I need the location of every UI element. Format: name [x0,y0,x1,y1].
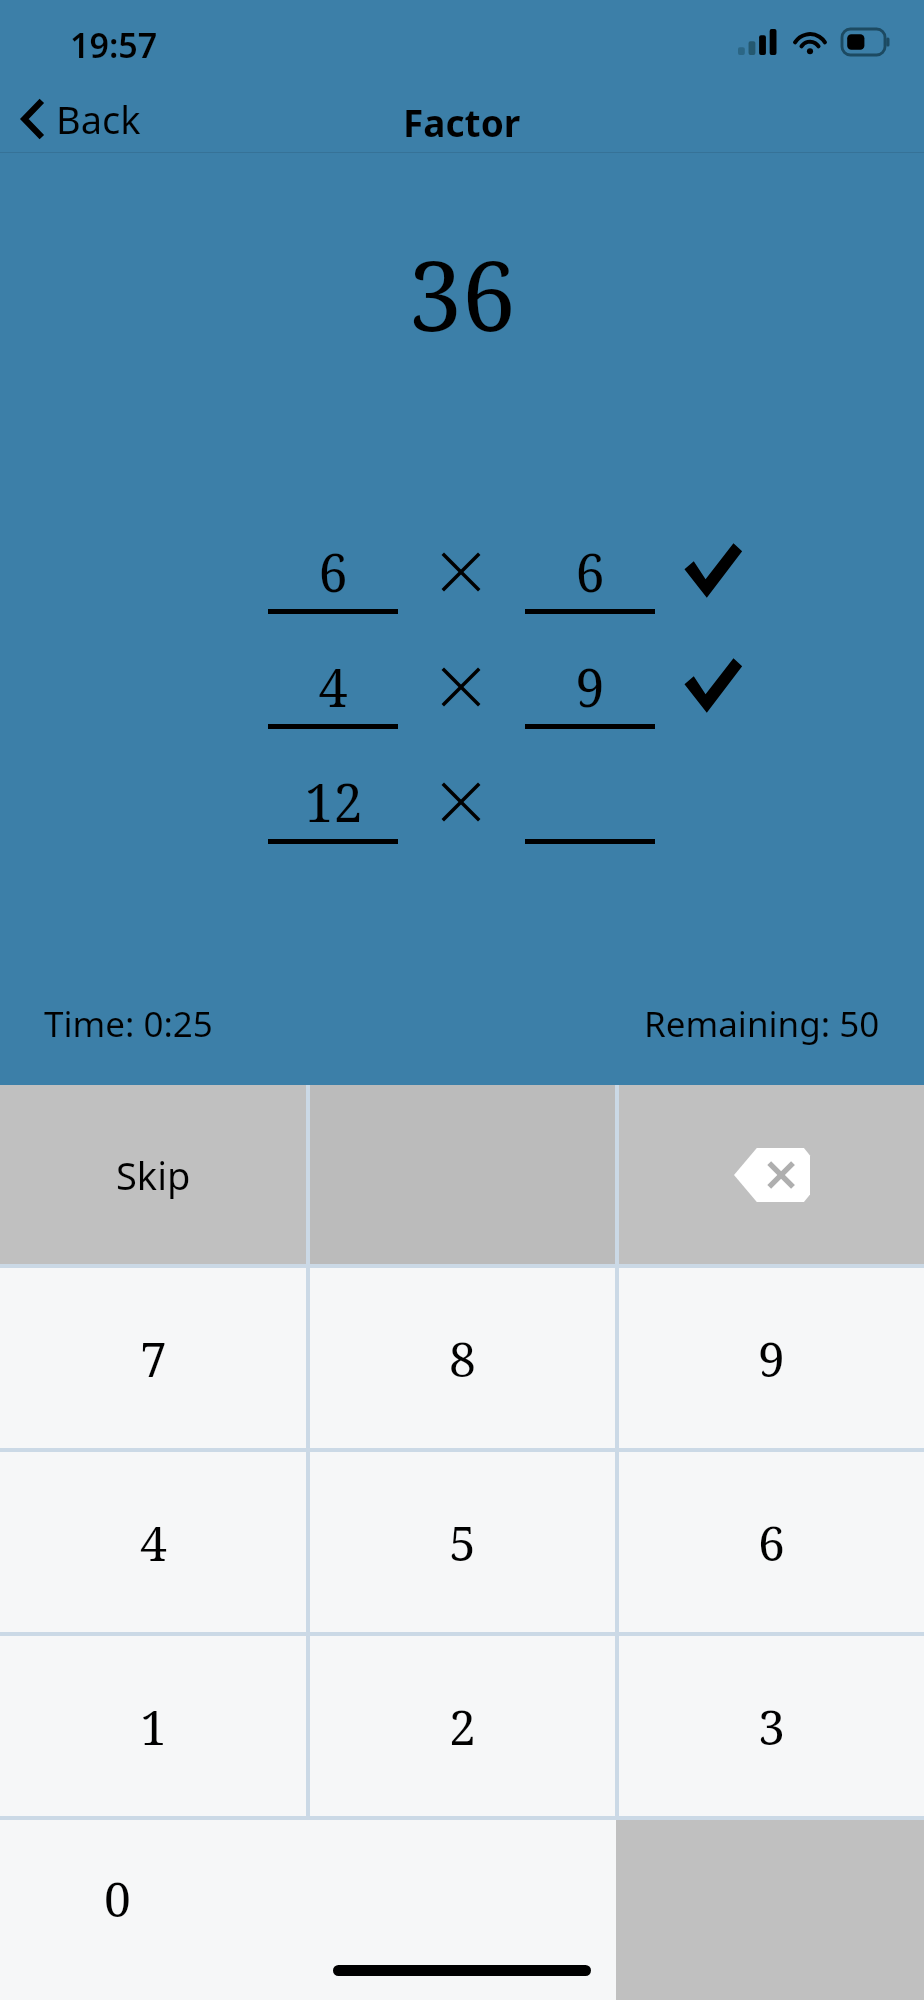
staticText: 2 [449,1694,476,1759]
staticText: 6 [575,536,605,607]
button[interactable]: 5 [310,1452,615,1632]
button[interactable]: Backspace [619,1085,924,1264]
button[interactable]: 8 [310,1268,615,1448]
staticText: 3 [758,1694,785,1759]
staticText: 36 [408,228,516,359]
button[interactable]: 2 [310,1636,615,1816]
staticText: 9 [575,651,605,722]
staticText: 12 [304,766,363,837]
staticText: 5 [449,1510,476,1575]
staticText: 4 [318,651,348,722]
button[interactable]: 6 [525,536,655,614]
button[interactable]: Skip [0,1085,306,1264]
staticText: 0 [104,1866,131,1931]
staticText: 4 [140,1510,167,1575]
staticText: 6 [758,1510,785,1575]
button[interactable]: 4 [0,1452,306,1632]
staticText: 19:57 [70,22,158,68]
button[interactable]: 7 [0,1268,306,1448]
button[interactable]: 9 [525,651,655,729]
button[interactable]: 3 [619,1636,924,1816]
staticText: Remaining: 50 [644,1000,880,1048]
button[interactable]: 0 [0,1820,616,2000]
button[interactable]: Back [0,88,159,150]
button[interactable]: 6 [619,1452,924,1632]
staticText: 9 [758,1326,785,1391]
button[interactable]: 12 [268,766,398,844]
staticText: Back [56,93,141,145]
button[interactable]: 1 [0,1636,306,1816]
staticText: 6 [318,536,348,607]
staticText: Skip [116,1149,191,1201]
staticText: 8 [449,1326,476,1391]
button[interactable] [525,766,655,844]
button[interactable]: 6 [268,536,398,614]
staticText: 7 [140,1326,167,1391]
staticText: Factor [403,97,521,147]
button[interactable]: 4 [268,651,398,729]
button[interactable]: 9 [619,1268,924,1448]
staticText: 1 [140,1694,167,1759]
staticText: Time: 0:25 [44,1000,213,1048]
